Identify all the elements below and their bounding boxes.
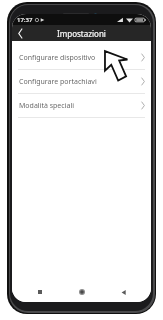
button[interactable]: Configurare portachiavi [12, 70, 151, 93]
staticText: Configurare portachiavi [19, 77, 141, 87]
button[interactable]: Modalità speciali [12, 94, 151, 117]
button[interactable]: Back [114, 282, 134, 302]
button[interactable]: Back [12, 25, 28, 41]
staticText: Modalità speciali [19, 101, 141, 111]
button[interactable]: Recents [30, 282, 50, 302]
staticText: Configurare dispositivo [19, 53, 141, 63]
button[interactable]: Configurare dispositivo [12, 46, 151, 69]
button[interactable]: Home [72, 282, 92, 302]
staticText: Impostazioni [57, 28, 106, 39]
staticText: 17:37 [17, 16, 33, 24]
